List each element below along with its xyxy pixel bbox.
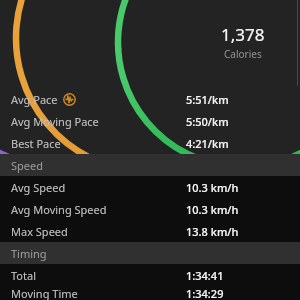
staticText: 1:34:29	[186, 286, 224, 300]
staticText: Avg Pace	[11, 92, 58, 107]
staticText: Speed	[11, 158, 43, 173]
staticText: 5:51/km	[186, 92, 229, 107]
button[interactable]: Avg Pace	[0, 88, 300, 110]
button[interactable]: Max Speed	[0, 220, 300, 242]
staticText: 5:50/km	[186, 114, 229, 129]
staticText: Best Pace	[11, 136, 61, 151]
staticText: 13.8 km/h	[186, 224, 239, 239]
staticText: Moving Time	[11, 286, 78, 300]
other: Pace detail	[63, 93, 76, 106]
staticText: Total	[11, 268, 36, 283]
staticText: 10.3 km/h	[186, 202, 239, 217]
button[interactable]: Best Pace	[0, 132, 300, 154]
button[interactable]: 1:34:41	[11, 0, 103, 86]
button[interactable]: Total	[0, 264, 300, 286]
staticText: Avg Moving Speed	[11, 202, 107, 217]
staticText: Avg Speed	[11, 180, 66, 195]
staticText: Calories	[224, 47, 262, 61]
button[interactable]: Moving Time	[0, 286, 300, 300]
button[interactable]: Avg Moving Pace	[0, 110, 300, 132]
staticText: 1:34:41	[186, 268, 224, 283]
staticText: Timing	[11, 246, 47, 261]
staticText: Avg Moving Pace	[11, 114, 99, 129]
staticText: Distance (km)	[118, 45, 182, 59]
button[interactable]: 16.20	[100, 0, 200, 82]
staticText: 10.3 km/h	[186, 180, 239, 195]
button[interactable]: Avg Speed	[0, 176, 300, 198]
button[interactable]: 1,378	[197, 0, 289, 86]
staticText: 1,378	[221, 23, 265, 46]
staticText: Max Speed	[11, 224, 68, 239]
button[interactable]: Avg Moving Speed	[0, 198, 300, 220]
staticText: 4:21/km	[186, 136, 229, 151]
